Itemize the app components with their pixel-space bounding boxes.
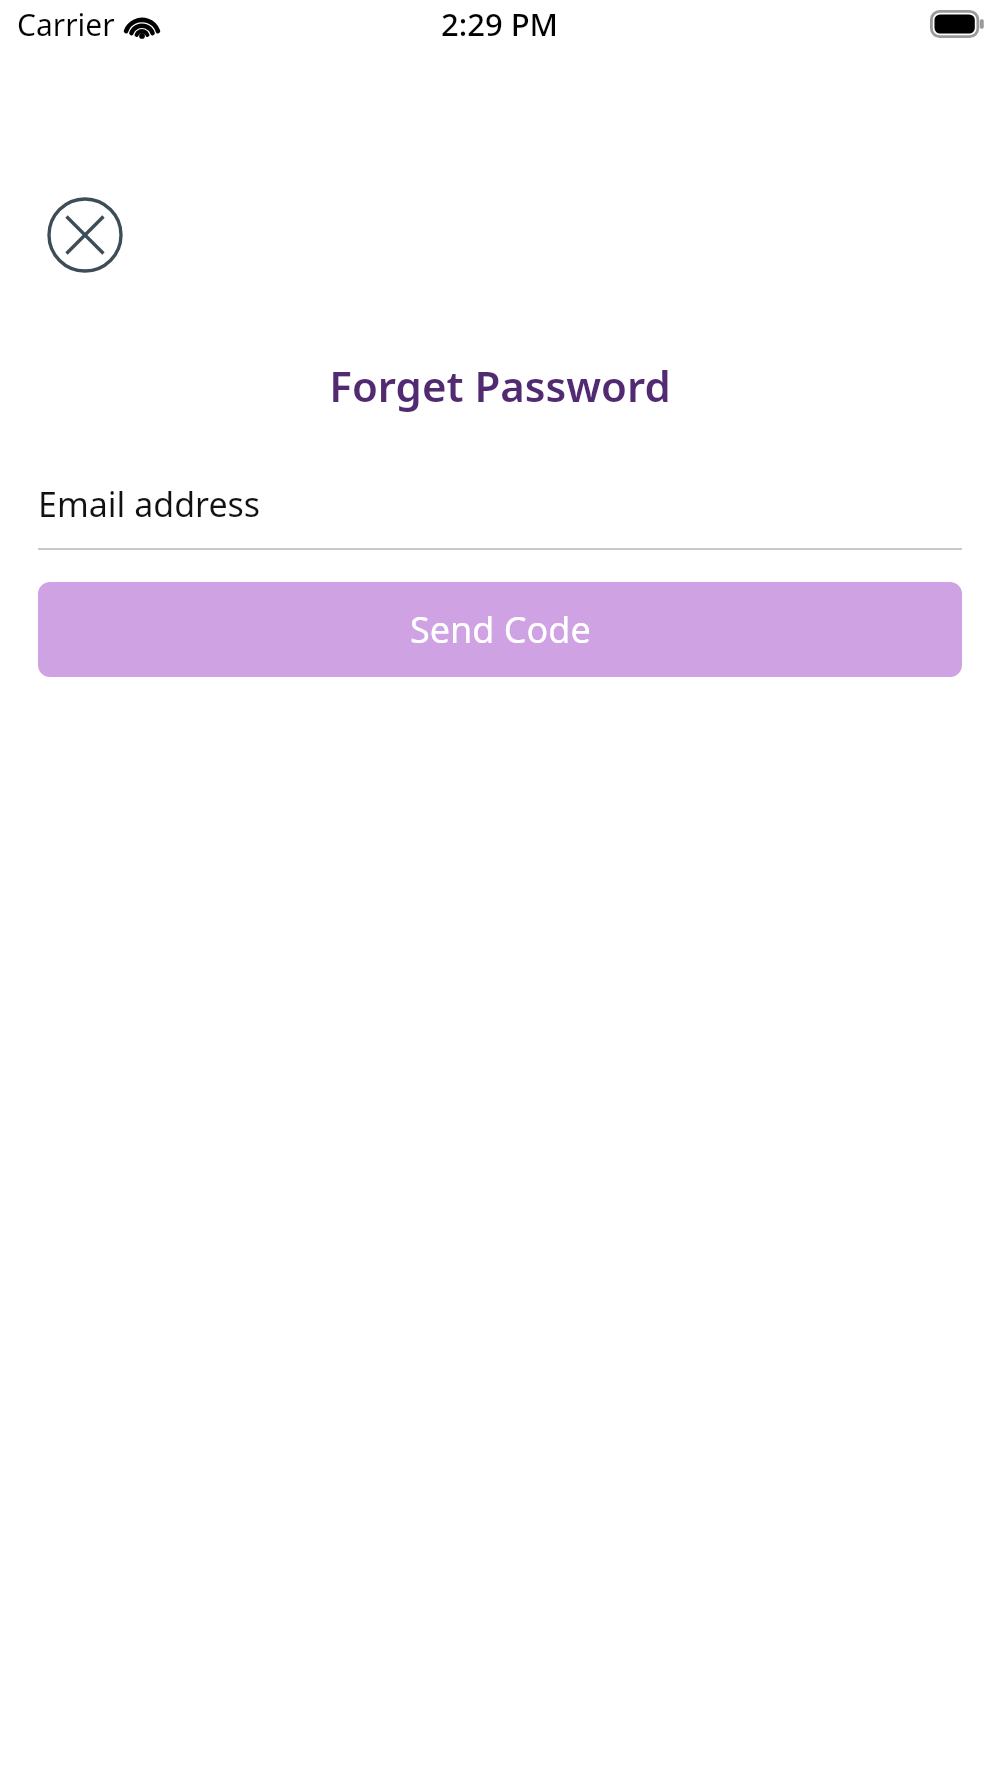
staticText: Send Code bbox=[410, 605, 591, 654]
staticText: 2:29 PM bbox=[441, 3, 559, 45]
staticText: Carrier bbox=[17, 4, 115, 45]
staticText: Forget Password bbox=[0, 357, 1000, 414]
button[interactable]: Send Code bbox=[38, 582, 962, 677]
button[interactable]: Email address bbox=[38, 481, 962, 550]
staticText: Email address bbox=[38, 481, 261, 527]
button[interactable]: Close bbox=[45, 195, 125, 275]
